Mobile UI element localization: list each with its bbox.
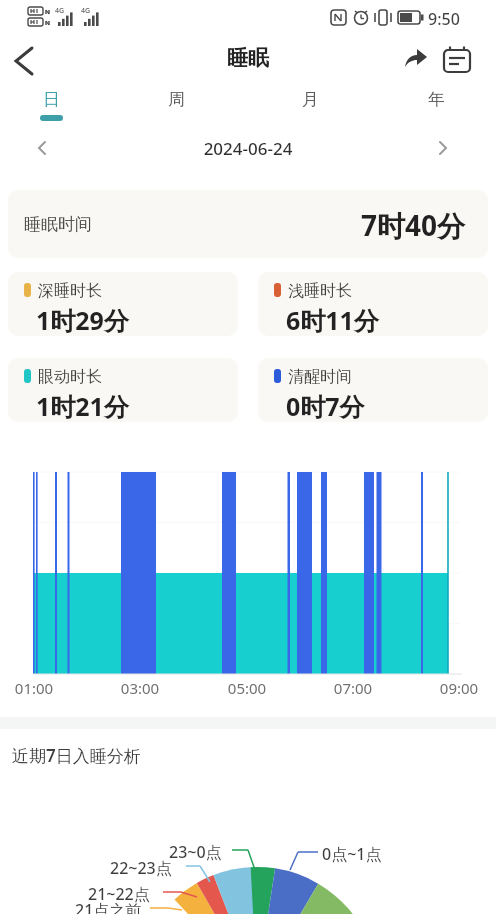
staticText: 清醒时间 [288, 367, 352, 387]
staticText: 浅睡时长 [288, 281, 352, 301]
button[interactable] [6, 44, 42, 80]
staticText: 03:00 [110, 678, 170, 698]
staticText: 9:50 [428, 8, 460, 30]
staticText: 周 [168, 89, 185, 110]
button[interactable]: 眼动时长 [8, 358, 238, 422]
staticText: 近期7日入睡分析 [12, 744, 141, 767]
staticText: 0点~1点 [322, 843, 382, 865]
staticText: 7时40分 [8, 206, 465, 244]
staticText: 深睡时长 [38, 281, 102, 301]
staticText: 6时11分 [286, 303, 379, 336]
staticText: 1时29分 [36, 303, 129, 336]
button[interactable] [427, 132, 459, 164]
button[interactable]: 月 [280, 86, 340, 126]
button[interactable]: 年 [406, 86, 466, 126]
staticText: 眼动时长 [38, 367, 102, 387]
staticText: 07:00 [323, 678, 383, 698]
staticText: 日 [43, 89, 60, 110]
button[interactable] [26, 132, 58, 164]
button[interactable]: 日 [21, 86, 81, 126]
button[interactable]: 浅睡时长 [258, 272, 488, 336]
staticText: 月 [302, 89, 319, 110]
staticText: 22~23点 [110, 857, 172, 879]
button[interactable]: 周 [146, 86, 206, 126]
staticText: 01:00 [4, 678, 64, 698]
button[interactable]: 清醒时间 [258, 358, 488, 422]
staticText: 1时21分 [36, 389, 129, 422]
staticText: 23~0点 [169, 841, 222, 863]
staticText: 4G [55, 6, 65, 16]
staticText: 21点之前 [75, 899, 142, 914]
button[interactable]: 睡眠时间 [8, 190, 488, 258]
staticText: 睡眠时间 [24, 214, 92, 235]
staticText: 0时7分 [286, 389, 365, 422]
staticText: 2024-06-24 [0, 137, 496, 160]
staticText: 21~22点 [88, 883, 150, 905]
button[interactable]: 深睡时长 [8, 272, 238, 336]
staticText: 年 [428, 89, 445, 110]
button[interactable] [400, 44, 434, 78]
staticText: 09:00 [429, 678, 489, 698]
staticText: 4G [81, 6, 91, 16]
staticText: 05:00 [217, 678, 277, 698]
button[interactable] [440, 44, 474, 78]
staticText: 睡眠 [0, 45, 496, 71]
